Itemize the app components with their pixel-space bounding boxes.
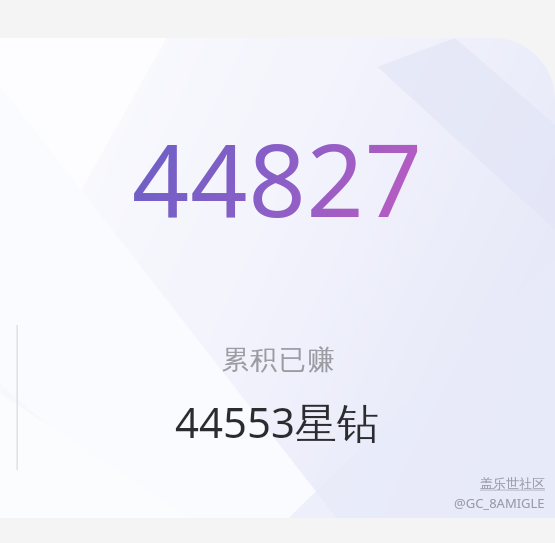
staticText: 44827 xyxy=(132,110,423,246)
staticText: @GC_8AMIGLE xyxy=(454,494,545,512)
button[interactable]: 44827 xyxy=(0,38,555,518)
staticText: 盖乐世社区 xyxy=(480,475,545,491)
staticText: 44553星钻 xyxy=(175,393,380,450)
staticText: 累积已赚 xyxy=(221,343,335,377)
button[interactable]: 盖乐世社区 @GC_8AMIGLE xyxy=(454,475,545,512)
